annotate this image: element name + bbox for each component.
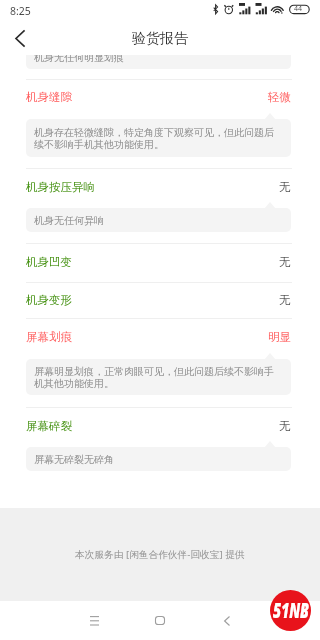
staticText: 屏幕无碎裂无碎角 [34, 453, 283, 466]
staticText: 无 [279, 180, 291, 194]
button[interactable]: Home [138, 604, 182, 637]
staticText: 44 [294, 4, 303, 14]
staticText: 机身无任何异响 [34, 214, 283, 227]
staticText: 本次服务由 [闲鱼合作伙伴-回收宝] 提供 [75, 548, 245, 561]
button[interactable] [0, 169, 320, 242]
button[interactable]: Recent apps [72, 604, 116, 637]
staticText: 无 [279, 419, 291, 433]
staticText: 机身变形 [26, 293, 72, 307]
staticText: 机身存在轻微缝隙，特定角度下观察可见，但此问题后续不影响手机其他功能使用。 [34, 126, 283, 151]
staticText: 机身按压异响 [26, 180, 95, 194]
staticText: 8:25 [10, 4, 31, 18]
staticText: 屏幕明显划痕，正常肉眼可见，但此问题后续不影响手机其他功能使用。 [34, 365, 283, 390]
staticText: 机身缝隙 [26, 90, 72, 104]
staticText: 无 [279, 293, 291, 307]
button[interactable] [0, 283, 320, 330]
staticText: 明显 [268, 330, 291, 344]
button[interactable]: Back [205, 604, 249, 637]
staticText: 机身凹变 [26, 255, 72, 269]
button[interactable] [0, 244, 320, 290]
button[interactable]: Back [0, 22, 36, 55]
staticText: 轻微 [268, 90, 291, 104]
button[interactable] [0, 408, 320, 481]
staticText: 51NB [272, 595, 310, 623]
button[interactable] [0, 319, 320, 405]
staticText: 机身无任何明显划痕 [34, 55, 124, 64]
staticText: 验货报告 [0, 30, 320, 48]
button[interactable] [0, 80, 320, 167]
staticText: 屏幕划痕 [26, 330, 72, 344]
staticText: 无 [279, 255, 291, 269]
staticText: 屏幕碎裂 [26, 419, 72, 433]
